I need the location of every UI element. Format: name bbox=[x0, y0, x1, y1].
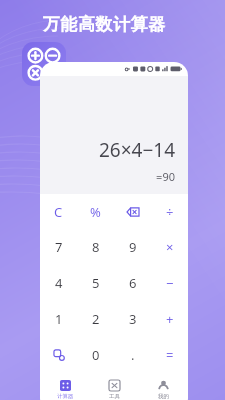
staticText: 5 bbox=[92, 274, 100, 292]
staticText: 9 bbox=[129, 238, 137, 256]
staticText: 我的 bbox=[158, 393, 169, 400]
button[interactable]: × bbox=[151, 229, 188, 265]
staticText: 8 bbox=[92, 238, 100, 256]
button[interactable]: Scientific functions bbox=[40, 337, 77, 373]
button[interactable]: C bbox=[40, 194, 77, 229]
staticText: % bbox=[90, 203, 101, 221]
staticText: 3 bbox=[129, 310, 137, 328]
button[interactable]: . bbox=[114, 337, 151, 373]
staticText: 2 bbox=[92, 310, 100, 328]
button[interactable]: 8 bbox=[77, 229, 114, 265]
button[interactable]: 3 bbox=[114, 301, 151, 337]
button[interactable]: 0 bbox=[77, 337, 114, 373]
button[interactable]: 2 bbox=[77, 301, 114, 337]
button[interactable]: 5 bbox=[77, 265, 114, 301]
staticText: 6 bbox=[129, 274, 137, 292]
staticText: + bbox=[166, 310, 174, 328]
button[interactable]: − bbox=[151, 265, 188, 301]
staticText: C bbox=[54, 203, 63, 221]
staticText: 1 bbox=[55, 310, 63, 328]
staticText: 工具 bbox=[109, 393, 120, 400]
button[interactable]: ÷ bbox=[151, 194, 188, 229]
staticText: × bbox=[166, 238, 174, 256]
staticText: = bbox=[166, 346, 174, 364]
staticText: 计算器 bbox=[57, 393, 74, 400]
button[interactable]: % bbox=[77, 194, 114, 229]
button[interactable]: Delete bbox=[114, 194, 151, 229]
button[interactable]: 工具 bbox=[90, 373, 139, 400]
button[interactable]: 9 bbox=[114, 229, 151, 265]
button[interactable]: 1 bbox=[40, 301, 77, 337]
staticText: ÷ bbox=[166, 203, 174, 221]
button[interactable]: = bbox=[151, 337, 188, 373]
staticText: 7 bbox=[55, 238, 63, 256]
staticText: 4 bbox=[55, 274, 63, 292]
staticText: − bbox=[166, 274, 174, 292]
staticText: 0 bbox=[92, 346, 100, 364]
staticText: =90 bbox=[156, 169, 175, 184]
button[interactable]: 我的 bbox=[139, 373, 188, 400]
staticText: . bbox=[131, 346, 135, 364]
button[interactable]: + bbox=[151, 301, 188, 337]
button[interactable]: Calculator app icon bbox=[22, 42, 66, 86]
staticText: 26×4−14 bbox=[98, 137, 175, 163]
staticText: 万能高数计算器 bbox=[43, 14, 166, 35]
button[interactable]: 6 bbox=[114, 265, 151, 301]
button[interactable]: 7 bbox=[40, 229, 77, 265]
button[interactable]: 计算器 bbox=[40, 373, 90, 400]
button[interactable]: 4 bbox=[40, 265, 77, 301]
